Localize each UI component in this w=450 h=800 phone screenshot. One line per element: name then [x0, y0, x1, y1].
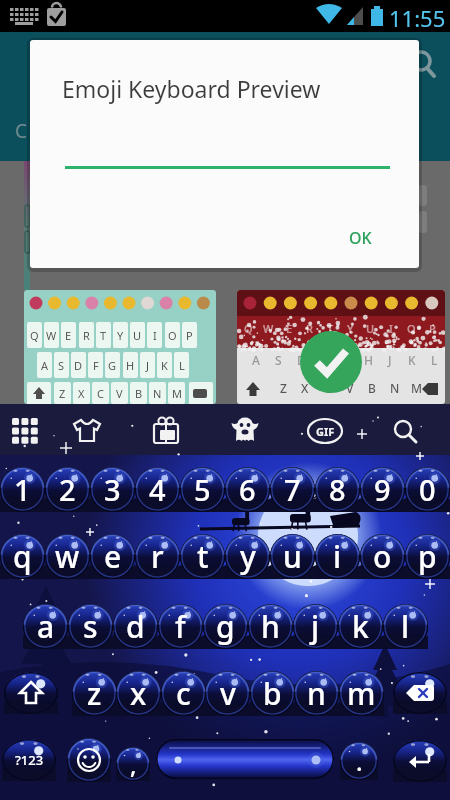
staticText: 8	[329, 470, 346, 509]
button[interactable]	[393, 672, 447, 714]
staticText: W	[46, 328, 57, 343]
button[interactable]	[68, 412, 106, 450]
button[interactable]: Q	[24, 290, 216, 404]
staticText: 1	[14, 470, 31, 509]
button[interactable]: AD	[147, 412, 185, 450]
staticText: F	[320, 352, 327, 368]
staticText: k	[352, 606, 369, 647]
button[interactable]: 3	[90, 467, 135, 512]
staticText: ?123	[15, 751, 44, 769]
button[interactable]: .	[340, 742, 378, 780]
button[interactable]: j	[293, 604, 338, 649]
staticText: 11:55	[389, 3, 446, 33]
button[interactable]: ,	[116, 747, 150, 781]
button[interactable]: k	[338, 604, 383, 649]
button[interactable]: o	[360, 534, 405, 579]
staticText: C	[97, 386, 104, 401]
button[interactable]: 7	[270, 467, 315, 512]
staticText: N	[153, 386, 162, 401]
button[interactable]: 4	[135, 467, 180, 512]
button[interactable]: a	[23, 604, 68, 649]
staticText: I	[389, 321, 393, 336]
staticText: Y	[347, 321, 354, 336]
staticText: T	[100, 328, 107, 343]
button[interactable]: ?123	[2, 739, 56, 781]
staticText: z	[87, 673, 102, 714]
staticText: T	[327, 321, 334, 336]
staticText: l	[401, 606, 410, 647]
button[interactable]	[393, 740, 447, 782]
button[interactable]: e	[90, 534, 135, 579]
staticText: X	[301, 380, 309, 396]
staticText: u	[283, 536, 302, 577]
staticText: .	[356, 745, 363, 778]
button[interactable]	[67, 738, 111, 782]
staticText: d	[126, 606, 145, 647]
staticText: s	[83, 606, 98, 647]
button[interactable]: 9	[360, 467, 405, 512]
staticText: 5	[194, 470, 211, 509]
button[interactable]: 6	[225, 467, 270, 512]
staticText: w	[55, 536, 80, 577]
button[interactable]: v	[205, 671, 250, 716]
staticText: S	[58, 358, 65, 373]
staticText: ,	[130, 748, 137, 781]
button[interactable]: 1	[0, 467, 45, 512]
button[interactable]	[6, 412, 44, 450]
staticText: o	[373, 536, 392, 577]
button[interactable]: l	[383, 604, 428, 649]
button[interactable]: u	[270, 534, 315, 579]
button[interactable]: r	[135, 534, 180, 579]
staticText: AD	[175, 443, 186, 453]
button[interactable]	[4, 672, 58, 714]
button[interactable]: t	[180, 534, 225, 579]
button[interactable]: 5	[180, 467, 225, 512]
button[interactable]: 2	[45, 467, 90, 512]
button[interactable]: b	[250, 671, 295, 716]
staticText: L	[431, 352, 438, 368]
button[interactable]: g	[203, 604, 248, 649]
button[interactable]: q	[0, 534, 45, 579]
staticText: GIF	[316, 424, 335, 439]
staticText: R	[83, 328, 90, 343]
staticText: E	[286, 321, 293, 336]
staticText: H	[364, 352, 373, 368]
button[interactable]: n	[294, 671, 339, 716]
button[interactable]	[156, 739, 334, 779]
staticText: P	[186, 328, 193, 343]
button[interactable]: z	[72, 671, 117, 716]
button[interactable]	[386, 412, 424, 450]
button[interactable]: y	[225, 534, 270, 579]
staticText: e	[104, 536, 122, 577]
button[interactable]: f	[158, 604, 203, 649]
button[interactable]: GIF	[305, 412, 345, 450]
staticText: 2	[59, 470, 76, 509]
button[interactable]: OK	[330, 221, 390, 255]
staticText: X	[78, 386, 85, 401]
button[interactable]	[50, 42, 94, 86]
button[interactable]: x	[116, 671, 161, 716]
button[interactable]: p	[405, 534, 450, 579]
button[interactable]: h	[248, 604, 293, 649]
button[interactable]: m	[339, 671, 384, 716]
button[interactable]: d	[113, 604, 158, 649]
button[interactable]: s	[68, 604, 113, 649]
button[interactable]	[404, 42, 448, 86]
button[interactable]: w	[45, 534, 90, 579]
staticText: f	[175, 606, 186, 647]
staticText: Emoji Keyboard Preview	[62, 73, 321, 104]
button[interactable]	[226, 412, 264, 450]
staticText: M	[172, 386, 182, 401]
staticText: m	[347, 673, 376, 714]
button[interactable]: c	[161, 671, 206, 716]
staticText: R	[306, 321, 313, 336]
staticText: D	[74, 358, 83, 373]
button[interactable]: i	[315, 534, 360, 579]
button[interactable]: Q	[237, 290, 445, 404]
staticText: B	[135, 386, 143, 401]
button[interactable]: 8	[315, 467, 360, 512]
staticText: K	[161, 358, 168, 373]
button[interactable]: 0	[405, 467, 450, 512]
staticText: r	[151, 536, 164, 577]
staticText: U	[366, 321, 375, 336]
